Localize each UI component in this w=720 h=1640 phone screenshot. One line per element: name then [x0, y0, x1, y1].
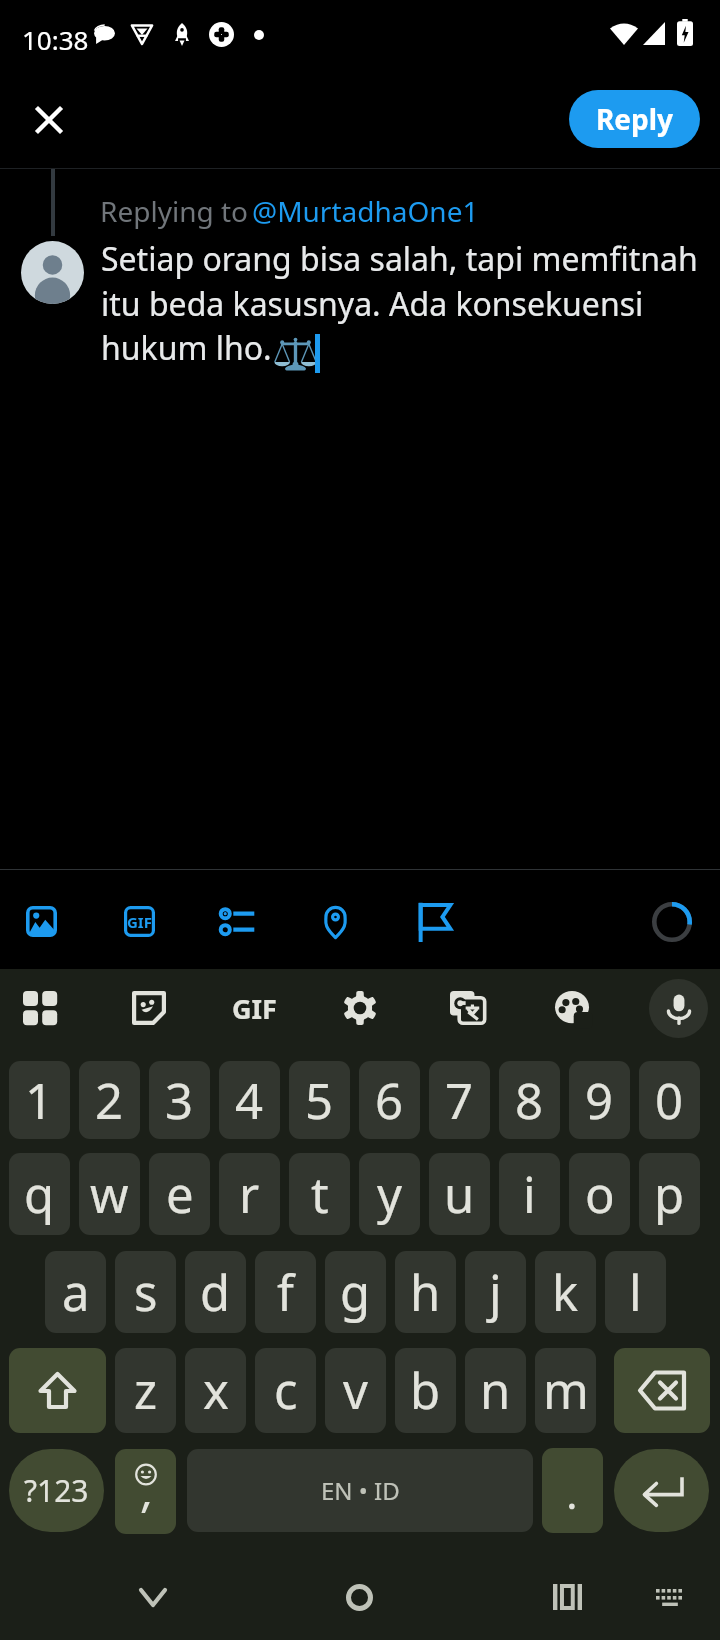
button[interactable]: 0 [639, 1061, 700, 1139]
staticText: EN • ID [321, 1474, 400, 1507]
staticText: GIF [127, 912, 152, 932]
button[interactable]: Character count [642, 892, 701, 951]
button[interactable]: Close [13, 84, 85, 156]
button[interactable]: x [185, 1348, 246, 1433]
staticText: o [585, 1161, 615, 1228]
button[interactable]: Settings [330, 978, 390, 1038]
button[interactable]: 8 [499, 1061, 560, 1139]
button[interactable]: Home [319, 1567, 399, 1627]
staticText: l [629, 1259, 642, 1326]
staticText: n [480, 1357, 511, 1424]
button[interactable]: Add topic [403, 890, 466, 953]
staticText: GIF [232, 990, 277, 1027]
staticText: f [277, 1259, 294, 1326]
staticText: 3 [165, 1067, 194, 1134]
staticText: h [410, 1259, 441, 1326]
button[interactable]: EN • ID [187, 1449, 533, 1532]
staticText: d [200, 1259, 231, 1326]
staticText: e [166, 1161, 194, 1228]
button[interactable]: 4 [219, 1061, 280, 1139]
button[interactable]: Add location [304, 890, 367, 953]
staticText: 4 [235, 1067, 264, 1134]
button[interactable]: Back [113, 1567, 193, 1627]
button[interactable]: j [465, 1251, 526, 1333]
button[interactable]: 9 [569, 1061, 630, 1139]
button[interactable]: n [465, 1348, 526, 1433]
staticText: r [239, 1161, 260, 1228]
staticText: w [90, 1161, 129, 1228]
button[interactable]: Add photo [10, 890, 73, 953]
staticText: p [654, 1161, 685, 1228]
staticText: 6 [375, 1067, 404, 1134]
staticText: a [62, 1259, 90, 1326]
staticText: Setiap orang bisa salah, tapi memfitnah … [101, 237, 698, 369]
button[interactable]: 7 [429, 1061, 490, 1139]
staticText: 0 [655, 1067, 684, 1134]
button[interactable]: 6 [359, 1061, 420, 1139]
staticText: @MurtadhaOne1 [252, 192, 479, 230]
staticText: Replying to [100, 192, 256, 230]
button[interactable]: b [395, 1348, 456, 1433]
button[interactable]: w [79, 1153, 140, 1235]
button[interactable]: g [325, 1251, 386, 1333]
button[interactable]: ?123 [9, 1449, 104, 1532]
button[interactable]: 1 [9, 1061, 70, 1139]
button[interactable]: s [115, 1251, 176, 1333]
button[interactable]: Period [542, 1448, 603, 1533]
button[interactable]: Apps [10, 978, 70, 1038]
button[interactable]: l [605, 1251, 666, 1333]
button[interactable]: c [255, 1348, 316, 1433]
button[interactable]: Emoji [115, 1449, 176, 1534]
button[interactable]: Switch keyboard [645, 1572, 695, 1622]
staticText: 2 [95, 1067, 124, 1134]
button[interactable]: v [325, 1348, 386, 1433]
button[interactable]: u [429, 1153, 490, 1235]
staticText: t [311, 1161, 329, 1228]
button[interactable]: Add poll [206, 890, 269, 953]
button[interactable]: f [255, 1251, 316, 1333]
staticText: k [552, 1259, 579, 1326]
staticText: b [410, 1357, 441, 1424]
button[interactable]: Backspace [614, 1348, 710, 1433]
staticText: x [203, 1357, 229, 1424]
button[interactable]: a [45, 1251, 106, 1333]
button[interactable]: Shift [9, 1348, 106, 1433]
button[interactable]: 2 [79, 1061, 140, 1139]
staticText: j [489, 1259, 502, 1326]
staticText: m [543, 1357, 589, 1424]
button[interactable]: d [185, 1251, 246, 1333]
staticText: 8 [515, 1067, 544, 1134]
button[interactable]: t [289, 1153, 350, 1235]
button[interactable]: e [149, 1153, 210, 1235]
button[interactable]: 5 [289, 1061, 350, 1139]
staticText: 10:38 [22, 22, 89, 57]
button[interactable]: 3 [149, 1061, 210, 1139]
staticText: c [274, 1357, 298, 1424]
button[interactable]: Stickers [119, 978, 179, 1038]
button[interactable]: Reply [569, 90, 700, 148]
staticText: 5 [305, 1067, 334, 1134]
button[interactable]: Theme [542, 978, 602, 1038]
button[interactable]: z [115, 1348, 176, 1433]
button[interactable]: r [219, 1153, 280, 1235]
staticText: ?123 [24, 1470, 89, 1511]
staticText: z [134, 1357, 158, 1424]
button[interactable]: Voice input [649, 979, 708, 1038]
button[interactable]: m [535, 1348, 596, 1433]
button[interactable]: o [569, 1153, 630, 1235]
staticText: 9 [585, 1067, 614, 1134]
button[interactable]: p [639, 1153, 700, 1235]
button[interactable]: k [535, 1251, 596, 1333]
button[interactable]: Add GIF [108, 890, 171, 953]
button[interactable]: h [395, 1251, 456, 1333]
button[interactable]: Recent apps [527, 1567, 607, 1627]
button[interactable]: Enter [614, 1449, 709, 1532]
button[interactable]: Translate [437, 978, 497, 1038]
staticText: q [24, 1161, 55, 1228]
staticText: g [340, 1259, 371, 1326]
button[interactable]: y [359, 1153, 420, 1235]
staticText: 1 [25, 1067, 54, 1134]
button[interactable]: q [9, 1153, 70, 1235]
button[interactable]: i [499, 1153, 560, 1235]
button[interactable]: GIF keyboard [224, 978, 284, 1038]
